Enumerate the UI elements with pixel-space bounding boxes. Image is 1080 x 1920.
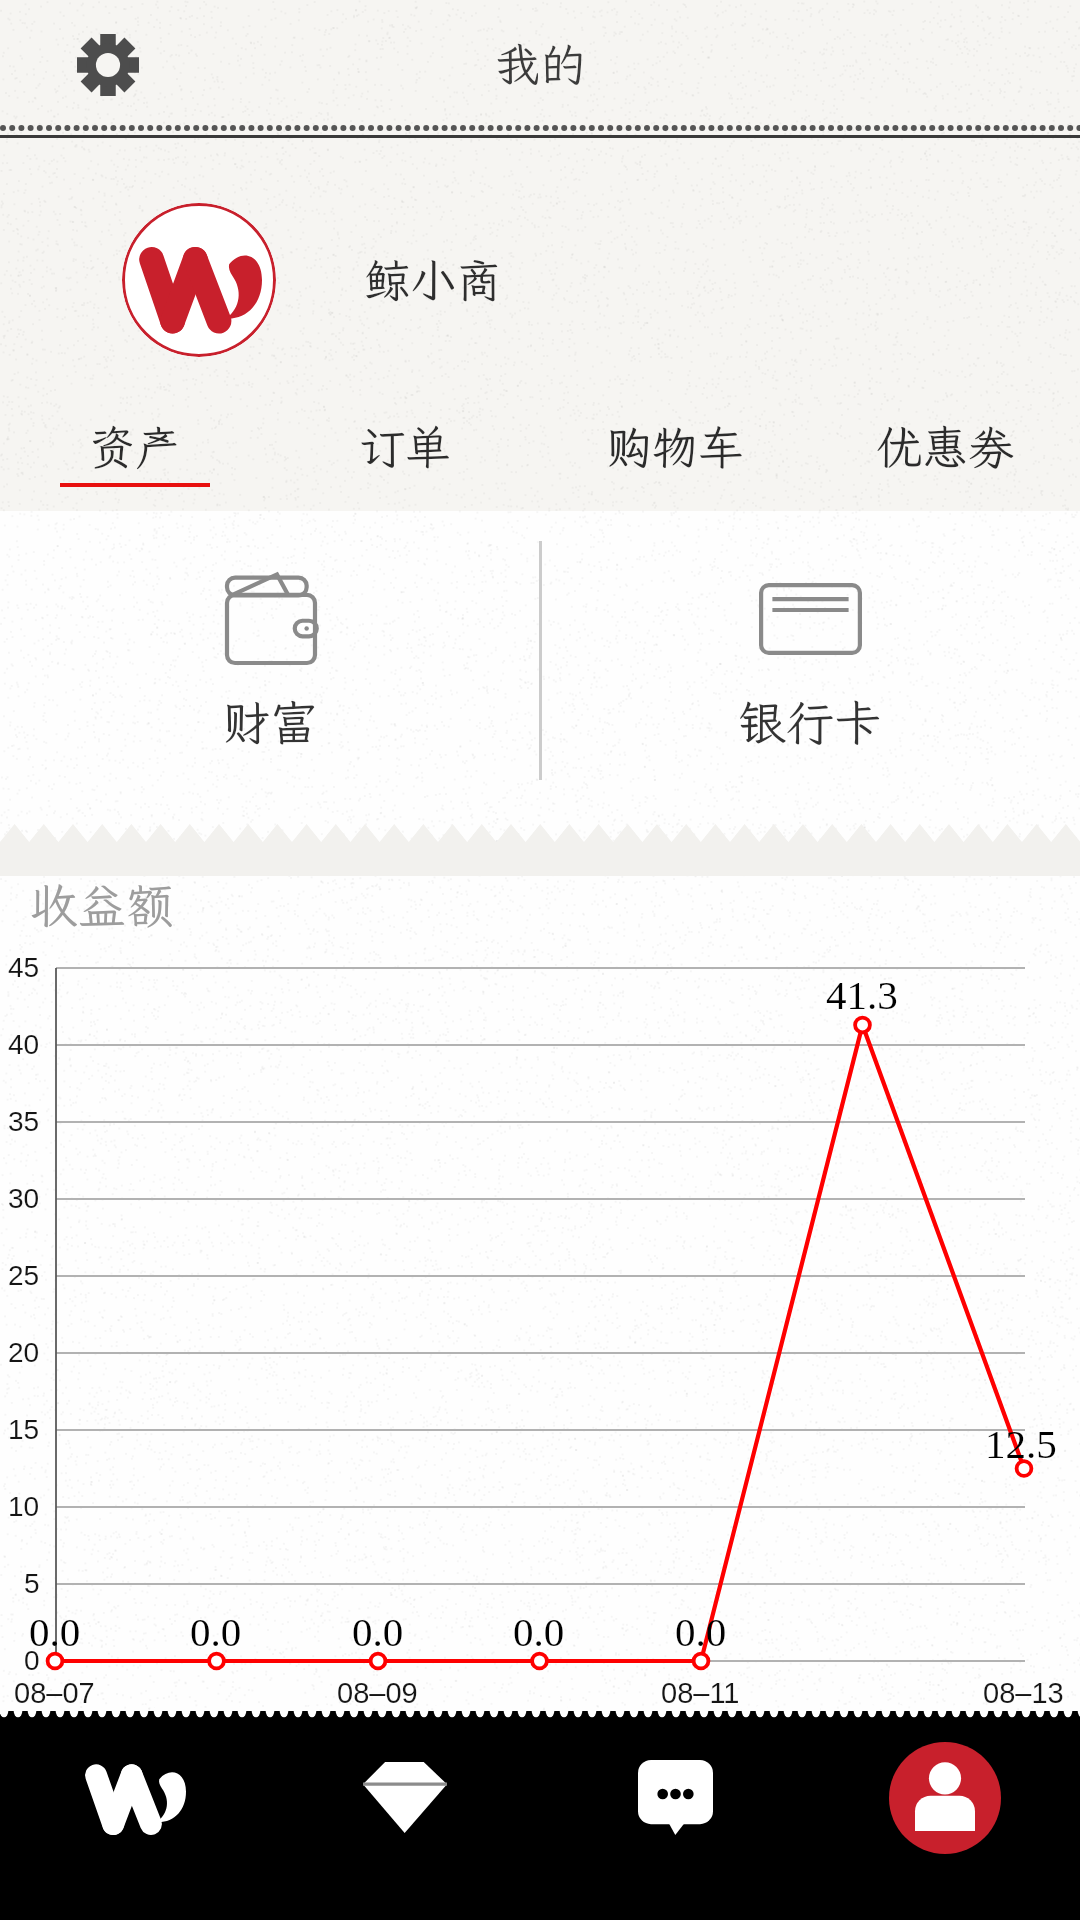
staticText: 鲸小商 — [364, 250, 502, 311]
button[interactable]: Home — [0, 1711, 270, 1920]
button[interactable]: 财富 — [0, 511, 540, 824]
staticText: 0.0 — [513, 1609, 565, 1654]
staticText: 资产 — [89, 417, 181, 478]
staticText: 银行卡 — [738, 690, 883, 753]
staticText: 08–11 — [661, 1677, 740, 1709]
button[interactable]: 优惠券 — [810, 417, 1080, 507]
staticText: 0.0 — [352, 1609, 404, 1654]
button[interactable]: Settings — [62, 19, 154, 111]
staticText: 08–13 — [983, 1677, 1064, 1709]
staticText: 0.0 — [190, 1609, 242, 1654]
staticText: 订单 — [359, 417, 451, 478]
button[interactable]: 购物车 — [540, 417, 810, 507]
staticText: 08–09 — [337, 1677, 418, 1709]
staticText: 40 — [8, 1029, 40, 1060]
staticText: 30 — [8, 1183, 40, 1214]
staticText: 我的 — [494, 34, 586, 95]
staticText: 0 — [24, 1645, 40, 1676]
staticText: 35 — [8, 1106, 40, 1137]
staticText: 20 — [8, 1337, 40, 1368]
staticText: 12.5 — [985, 1421, 1057, 1466]
staticText: 10 — [8, 1491, 40, 1522]
button[interactable]: 资产 — [0, 417, 270, 507]
staticText: 15 — [8, 1414, 40, 1445]
staticText: 5 — [24, 1568, 40, 1599]
staticText: 收益额 — [30, 873, 175, 936]
button[interactable]: Messages — [540, 1711, 810, 1920]
staticText: 41.3 — [826, 972, 898, 1017]
button[interactable]: Rewards — [270, 1711, 540, 1920]
staticText: 0.0 — [29, 1609, 81, 1654]
button[interactable]: Profile — [889, 1742, 1001, 1854]
button[interactable]: 订单 — [270, 417, 540, 507]
staticText: 0.0 — [675, 1609, 727, 1654]
staticText: 优惠券 — [876, 417, 1014, 478]
staticText: 购物车 — [606, 417, 744, 478]
button[interactable]: 鲸小商 — [0, 203, 1080, 357]
staticText: 财富 — [222, 690, 319, 753]
staticText: 45 — [8, 952, 40, 983]
staticText: 25 — [8, 1260, 40, 1291]
staticText: 08–07 — [14, 1677, 95, 1709]
button[interactable]: 银行卡 — [540, 511, 1080, 824]
